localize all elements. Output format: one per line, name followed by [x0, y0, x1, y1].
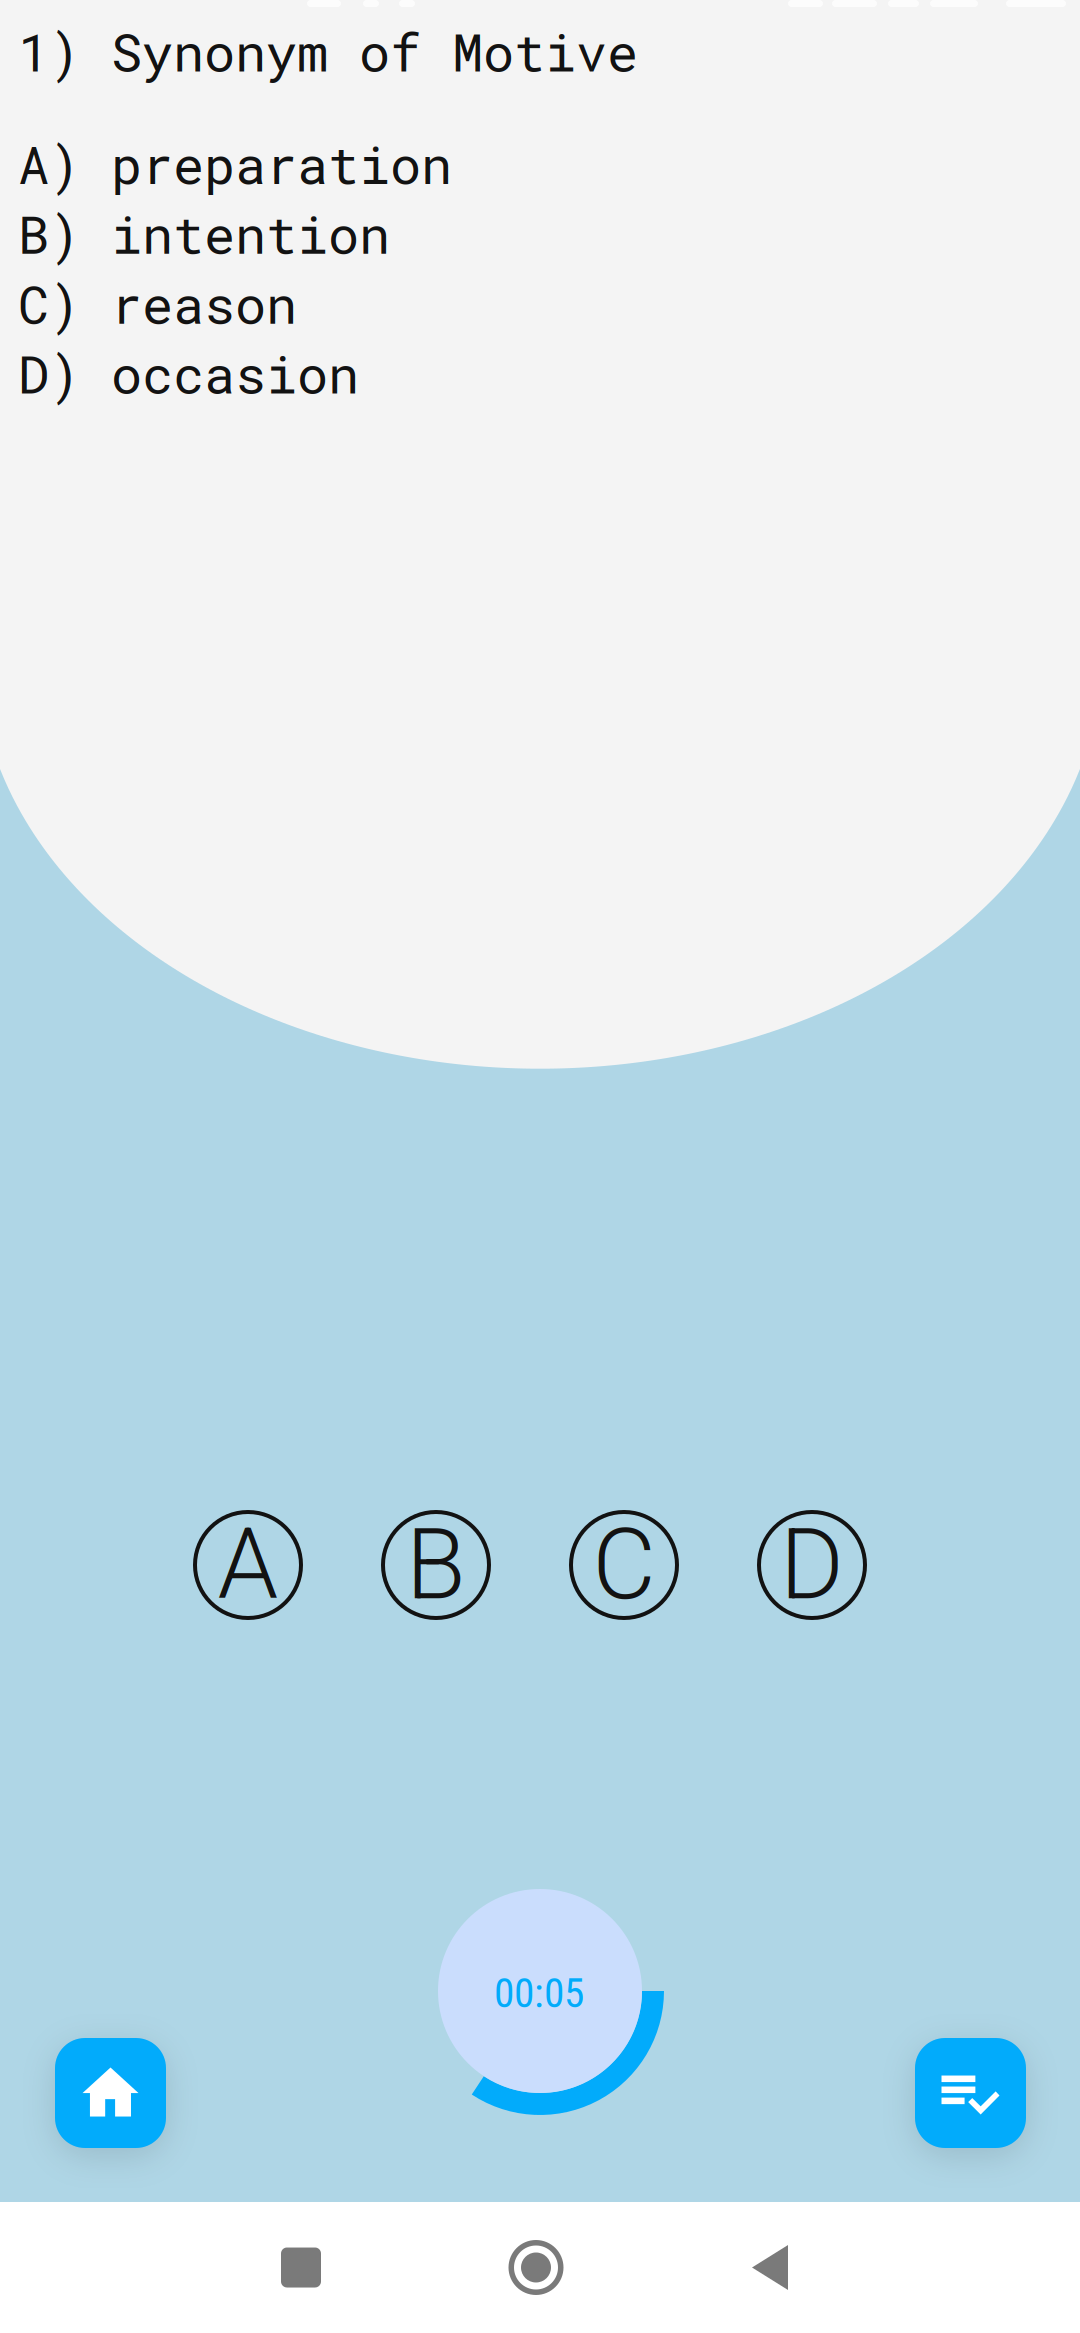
- button[interactable]: Home: [55, 2038, 166, 2148]
- staticText: C: [592, 1508, 655, 1622]
- button[interactable]: C: [549, 1490, 699, 1640]
- button[interactable]: A: [173, 1490, 323, 1640]
- staticText: A: [217, 1508, 278, 1622]
- button[interactable]: D: [737, 1490, 887, 1640]
- button[interactable]: B: [361, 1490, 511, 1640]
- staticText: B: [406, 1508, 466, 1622]
- button[interactable]: Back: [685, 2202, 855, 2333]
- staticText: 1) Synonym of Motive: [18, 17, 638, 86]
- button[interactable]: Home: [451, 2202, 621, 2333]
- button[interactable]: Recent apps: [216, 2202, 386, 2333]
- staticText: D: [780, 1508, 844, 1622]
- button[interactable]: Answer sheet: [915, 2038, 1026, 2148]
- staticText: 00:05: [494, 1969, 584, 2017]
- staticText: A) preparation B) intention C) reason D)…: [18, 130, 452, 407]
